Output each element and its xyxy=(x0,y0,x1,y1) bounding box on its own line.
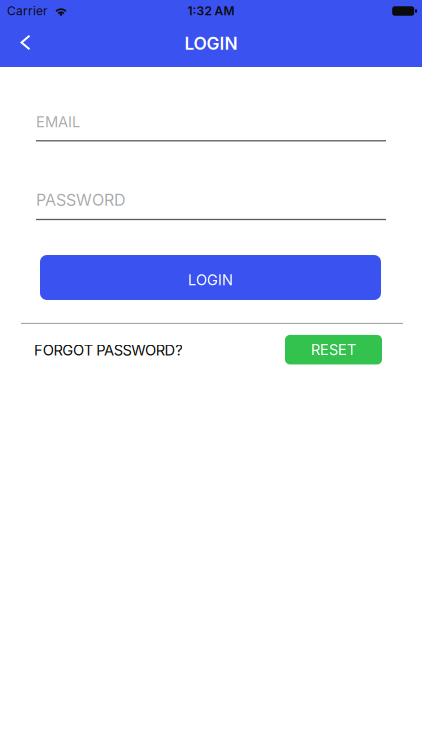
staticText: LOGIN xyxy=(188,271,233,289)
staticText: FORGOT PASSWORD? xyxy=(34,341,182,359)
button[interactable]: LOGIN xyxy=(40,255,381,300)
button[interactable]: RESET xyxy=(285,335,382,364)
staticText: PASSWORD xyxy=(36,191,126,209)
staticText: Carrier xyxy=(7,4,48,18)
staticText: RESET xyxy=(311,341,356,358)
staticText: LOGIN xyxy=(184,33,237,54)
staticText: 1:32 AM xyxy=(187,4,234,18)
staticText: EMAIL xyxy=(36,113,80,131)
button[interactable]: Back xyxy=(0,24,45,65)
